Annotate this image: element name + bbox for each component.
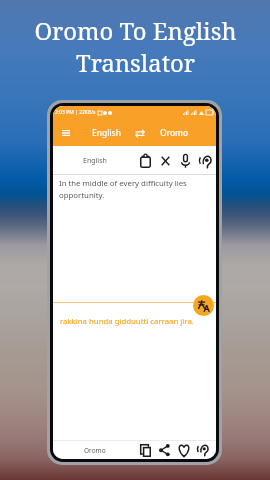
staticText: English: [83, 156, 107, 166]
button[interactable]: Translate: [193, 295, 214, 316]
button[interactable]: Listen: [194, 441, 212, 459]
button[interactable]: English: [85, 119, 127, 146]
button[interactable]: Oromo: [77, 440, 113, 459]
staticText: Oromo To English: [34, 15, 237, 47]
staticText: Translator: [76, 47, 195, 79]
staticText: rakkina hunda gidduutti carraan jira.: [60, 316, 194, 327]
button[interactable]: Copy: [136, 441, 154, 459]
button[interactable]: Listen: [196, 152, 214, 170]
button[interactable]: Oromo: [153, 119, 195, 146]
staticText: English: [92, 127, 121, 139]
button[interactable]: Voice input: [176, 152, 194, 170]
button[interactable]: Paste: [136, 152, 154, 170]
button[interactable]: Favorite: [175, 441, 193, 459]
staticText: Oromo: [84, 446, 106, 455]
button[interactable]: Share: [155, 441, 173, 459]
staticText: In the middle of every difficulty lies o…: [59, 178, 189, 200]
button[interactable]: English: [77, 146, 113, 175]
button[interactable]: Swap languages: [131, 124, 149, 142]
button[interactable]: Menu: [57, 124, 74, 141]
button[interactable]: Clear: [156, 152, 174, 170]
staticText: 2:03 PM | 22KB/s: [55, 109, 96, 116]
staticText: Oromo: [160, 127, 189, 139]
